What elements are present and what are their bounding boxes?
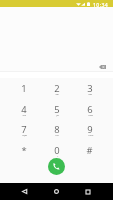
button[interactable]: Recents	[72, 183, 104, 200]
staticText: 2	[54, 82, 60, 95]
staticText: JKL	[56, 113, 59, 116]
button[interactable]: Home	[40, 183, 72, 200]
staticText: 9	[87, 123, 93, 136]
staticText: DEF	[88, 92, 92, 95]
other: Battery	[87, 2, 90, 6]
staticText: GHI	[22, 113, 26, 116]
button[interactable]: #	[73, 144, 106, 165]
button[interactable]: 8	[40, 123, 73, 144]
button[interactable]: Backspace	[95, 60, 109, 74]
other: Wi-Fi	[76, 2, 81, 6]
button[interactable]: 3	[73, 82, 106, 103]
staticText: 8	[54, 123, 60, 136]
button[interactable]: 0	[40, 144, 73, 165]
staticText: ABC	[55, 92, 59, 95]
button[interactable]: 9	[73, 123, 106, 144]
staticText: MNO	[88, 113, 93, 116]
staticText: PQRS	[22, 133, 27, 136]
staticText: 3	[87, 82, 93, 95]
staticText: #	[86, 144, 93, 157]
staticText: 1	[21, 82, 27, 95]
staticText: 6	[87, 103, 93, 116]
staticText: WXYZ	[88, 133, 93, 136]
other: Signal	[81, 2, 85, 6]
staticText: 5	[54, 103, 60, 116]
staticText: TUV	[55, 133, 59, 136]
button[interactable]: Call	[48, 158, 65, 175]
staticText: 4	[21, 103, 27, 116]
button[interactable]: *	[7, 144, 40, 165]
button[interactable]: 2	[40, 82, 73, 103]
button[interactable]: 6	[73, 103, 106, 124]
button[interactable]: 4	[7, 103, 40, 124]
button[interactable]: Back	[9, 183, 40, 200]
staticText: 0	[54, 144, 60, 157]
staticText: 10:34	[93, 1, 109, 8]
staticText: +	[57, 154, 58, 157]
button[interactable]: 5	[40, 103, 73, 124]
button[interactable]: 1	[7, 82, 40, 103]
button[interactable]: 7	[7, 123, 40, 144]
staticText: 7	[21, 123, 27, 136]
staticText: *	[21, 144, 27, 157]
